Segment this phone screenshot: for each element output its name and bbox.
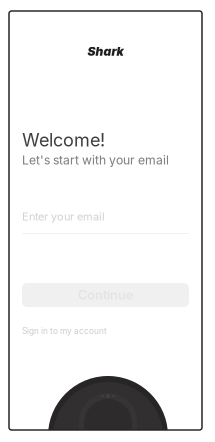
staticText: Let's start with your email <box>22 153 169 167</box>
staticText: Sign in to my account <box>22 326 107 336</box>
staticText: Enter your email <box>22 210 105 223</box>
staticText: Continue <box>78 288 133 302</box>
button[interactable]: Shark <box>87 45 123 58</box>
button[interactable]: Sign in to my account <box>22 326 107 336</box>
staticText: Shark <box>87 44 123 58</box>
staticText: Welcome! <box>22 129 105 150</box>
